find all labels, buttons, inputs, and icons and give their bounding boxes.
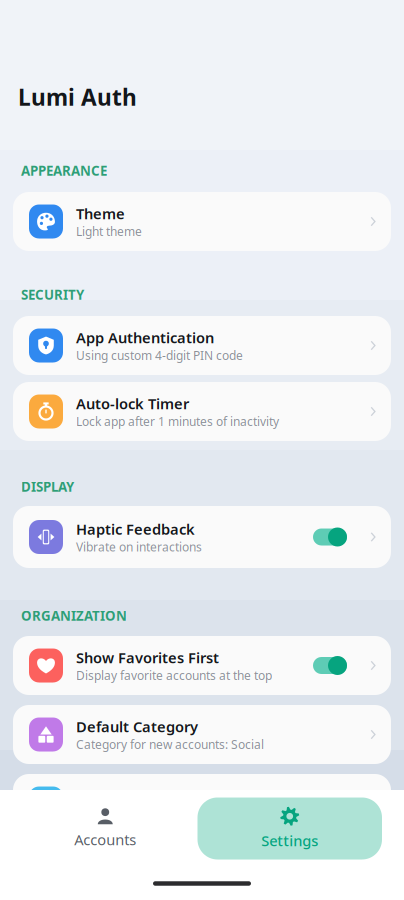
button[interactable]: Show Favorites First bbox=[13, 636, 391, 695]
staticText: ORGANIZATION bbox=[21, 607, 127, 624]
staticText: Lumi Auth bbox=[18, 82, 137, 112]
staticText: Auto-lock Timer bbox=[76, 394, 189, 413]
staticText: App Authentication bbox=[76, 328, 214, 347]
button[interactable]: Accounts bbox=[13, 797, 197, 859]
staticText: Category for new accounts: Social bbox=[76, 736, 264, 752]
staticText: Vibrate on interactions bbox=[76, 539, 202, 555]
button[interactable]: App Authentication bbox=[13, 316, 391, 375]
staticText: Theme bbox=[76, 204, 125, 223]
staticText: Display favorite accounts at the top bbox=[76, 667, 272, 683]
staticText: DISPLAY bbox=[21, 478, 74, 495]
staticText: Light theme bbox=[76, 223, 142, 239]
button[interactable]: Settings bbox=[197, 797, 382, 859]
staticText: Accounts bbox=[74, 830, 136, 849]
staticText: Lock app after 1 minutes of inactivity bbox=[76, 413, 279, 429]
staticText: Default Category bbox=[76, 717, 198, 736]
button[interactable]: Auto-lock Timer bbox=[13, 382, 391, 441]
staticText: Haptic Feedback bbox=[76, 519, 195, 539]
staticText: APPEARANCE bbox=[21, 162, 107, 179]
staticText: Show Favorites First bbox=[76, 648, 219, 667]
button[interactable] bbox=[13, 774, 391, 833]
button[interactable]: Default Category bbox=[13, 705, 391, 764]
button[interactable]: Haptic Feedback bbox=[13, 506, 391, 568]
staticText: SECURITY bbox=[21, 286, 84, 303]
button[interactable]: Theme bbox=[13, 192, 391, 251]
staticText: Settings bbox=[261, 831, 318, 850]
staticText: Using custom 4-digit PIN code bbox=[76, 347, 243, 363]
